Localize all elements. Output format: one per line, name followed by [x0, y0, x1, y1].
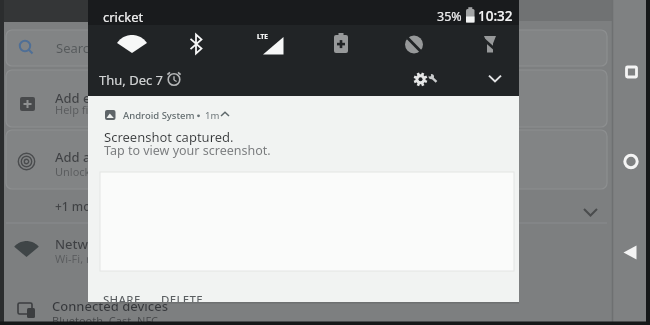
staticText: Tap to view your screenshot.	[104, 142, 271, 159]
staticText: 10:32	[478, 7, 513, 25]
button[interactable]	[394, 27, 434, 61]
staticText: Search settings	[56, 39, 150, 57]
staticText: DELETE	[161, 292, 204, 302]
staticText: 35%	[437, 8, 462, 25]
staticText: Bluetooth, Cast, NFC	[52, 313, 159, 325]
staticText: +1 more	[55, 198, 103, 214]
button[interactable]	[470, 27, 510, 61]
button[interactable]	[6, 130, 607, 189]
button[interactable]	[6, 70, 607, 127]
button[interactable]	[6, 295, 607, 322]
staticText: Add email account	[55, 89, 171, 107]
staticText: Screenshot captured.	[104, 128, 234, 146]
staticText: LTE	[257, 32, 268, 41]
staticText: Add another fingerprint	[55, 148, 204, 166]
button[interactable]	[6, 192, 607, 223]
button[interactable]: SHARE	[96, 288, 144, 302]
button[interactable]	[6, 228, 607, 273]
staticText: Help finish your setup	[55, 102, 169, 117]
staticText: 1m	[205, 109, 220, 122]
button[interactable]	[6, 30, 607, 66]
button[interactable]	[612, 138, 650, 186]
button[interactable]	[406, 64, 448, 94]
staticText: Unlock your phone faster	[55, 164, 186, 179]
button[interactable]	[112, 27, 152, 61]
button[interactable]	[612, 229, 650, 277]
button[interactable]	[176, 27, 216, 61]
button[interactable]	[477, 64, 513, 94]
staticText: Wi-Fi, mobile, data usage, hotspot	[55, 251, 231, 266]
staticText: Android System	[123, 109, 195, 122]
button[interactable]	[250, 27, 290, 61]
staticText: Network & internet	[55, 235, 176, 253]
button[interactable]	[321, 27, 361, 61]
button[interactable]	[612, 48, 650, 96]
staticText: Connected devices	[52, 297, 169, 315]
button[interactable]: Android System	[88, 96, 519, 302]
staticText: SHARE	[103, 292, 141, 302]
staticText: Thu, Dec 7	[99, 71, 164, 89]
staticText: cricket	[103, 8, 144, 26]
button[interactable]: DELETE	[153, 288, 205, 302]
